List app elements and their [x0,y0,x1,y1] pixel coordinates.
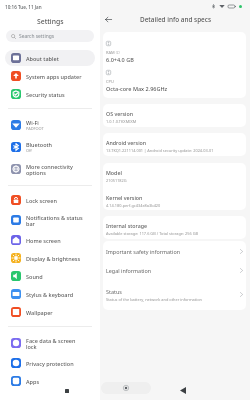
button[interactable]: Notifications & status bar [5,210,95,230]
staticText: 13.TKQ1.221114.001 | Android security up… [106,148,214,153]
staticText: Apps [26,378,40,385]
staticText: Available storage: 117.6 GB / Total stor… [106,231,199,236]
staticText: Face data & screen lock [26,337,85,350]
button[interactable]: Sound [5,268,95,284]
staticText: RAM ⓘ [106,50,120,55]
button[interactable]: More connectivity options [5,159,95,179]
staticText: CPU [106,79,114,84]
button[interactable]: Back [176,384,189,397]
button[interactable]: Important safety information [103,242,246,261]
staticText: Home screen [26,237,61,244]
button[interactable]: Face data & screen lock [5,333,95,353]
staticText: Privacy protection [26,360,74,367]
staticText: PADFOOT [26,126,44,131]
staticText: Status of the battery, network and other… [106,297,202,302]
staticText: Android version [106,139,147,146]
staticText: Search settings [19,33,55,40]
button[interactable]: Search settings [6,30,94,42]
button[interactable]: Legal information [103,261,246,280]
staticText: Sound [26,273,43,280]
button[interactable]: Apps [5,373,95,389]
staticText: Legal information [106,267,152,274]
staticText: Bluetooth [26,141,53,148]
staticText: System apps updater [26,73,82,80]
staticText: Status [106,288,122,295]
button[interactable]: Wallpaper [5,304,95,320]
staticText: 10:16 Tue, 11 Jan [5,4,42,10]
staticText: 1.0.1.0.TKXMIXM [106,119,137,124]
staticText: Display & brightness [26,255,81,262]
staticText: Wi-Fi [26,119,39,126]
button[interactable]: Lock screen [5,192,95,208]
button[interactable]: Recents [60,384,73,397]
staticText: Model [106,169,122,176]
staticText: Off [26,148,32,153]
staticText: Internal storage [106,222,147,229]
staticText: OS version [106,110,134,117]
staticText: About tablet [26,55,59,62]
button[interactable]: Home [101,382,151,394]
button[interactable]: Display & brightness [5,250,95,266]
staticText: More connectivity options [26,163,85,176]
staticText: Octa-core Max 2.96GHz [106,85,168,92]
button[interactable]: Home screen [5,232,95,248]
staticText: Detailed info and specs [140,15,212,24]
staticText: 6.0+4.0 GB [106,56,134,63]
staticText: Stylus & keyboard [26,291,74,298]
button[interactable]: Wi-Fi [5,115,95,135]
staticText: Security status [26,91,65,98]
staticText: Lock screen [26,197,57,204]
staticText: 4.14.180-perf-gc434e8a3b420 [106,203,161,208]
button[interactable]: System apps updater [5,68,95,84]
staticText: Notifications & status bar [26,214,85,227]
staticText: Kernel version [106,194,143,201]
button[interactable]: Stylus & keyboard [5,286,95,302]
button[interactable]: Privacy protection [5,355,95,371]
staticText: Settings [37,17,64,26]
button[interactable]: About tablet [5,50,95,66]
button[interactable]: Back [102,13,115,26]
button[interactable]: Status [103,280,246,309]
staticText: Important safety information [106,248,180,255]
staticText: 21051182G [106,178,127,183]
button[interactable]: Bluetooth [5,137,95,157]
staticText: Wallpaper [26,309,53,316]
button[interactable]: Security status [5,86,95,102]
